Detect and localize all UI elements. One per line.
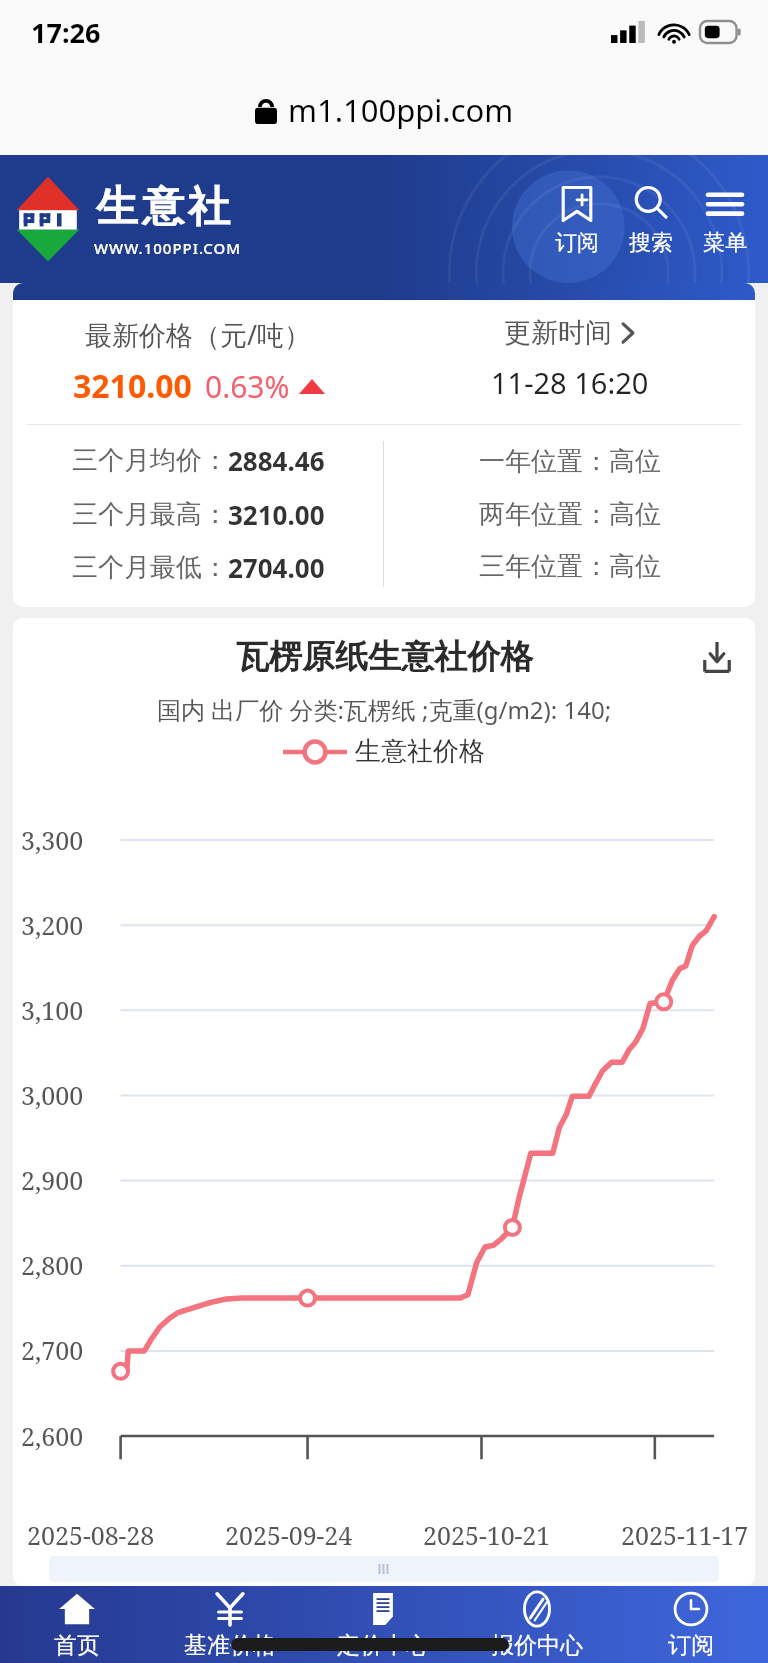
staticText: 生意社价格: [355, 735, 485, 768]
staticText: WWW.100PPI.COM: [94, 238, 242, 258]
staticText: 最新价格（元/吨）: [85, 316, 312, 353]
staticText: 高位: [609, 498, 661, 531]
staticText: 搜索: [629, 229, 673, 257]
staticText: 3,300: [21, 823, 755, 857]
staticText: 2025-10-21: [423, 1518, 551, 1552]
staticText: 3,100: [21, 993, 755, 1027]
staticText: 高位: [609, 445, 661, 478]
button[interactable]: 菜单: [700, 181, 750, 257]
button[interactable]: 更新时间: [384, 316, 755, 402]
staticText: 一年位置：: [479, 445, 609, 478]
staticText: 0.63%: [205, 366, 290, 407]
button[interactable]: 下载: [699, 639, 735, 675]
staticText: 2,700: [21, 1333, 755, 1367]
staticText: 2025-11-17: [621, 1518, 749, 1552]
button[interactable]: 订阅: [552, 181, 602, 257]
staticText: 更新时间: [504, 316, 612, 350]
staticText: m1.100ppi.com: [288, 89, 514, 131]
staticText: 2,600: [21, 1419, 755, 1453]
staticText: 定价中心: [337, 1631, 429, 1660]
button[interactable]: 基准价格: [153, 1586, 306, 1663]
button[interactable]: 报价中心: [460, 1586, 614, 1663]
staticText: 2025-09-24: [225, 1518, 353, 1552]
staticText: 生意社: [94, 181, 232, 234]
staticText: 三个月最高：: [72, 498, 228, 531]
staticText: 三个月最低：: [72, 551, 228, 584]
staticText: 17:26: [31, 14, 101, 51]
staticText: 菜单: [703, 229, 747, 257]
staticText: 2,800: [21, 1248, 755, 1282]
staticText: 订阅: [668, 1631, 714, 1660]
staticText: 2025-08-28: [27, 1518, 155, 1552]
staticText: 2884.46: [228, 443, 325, 478]
staticText: 2704.00: [228, 550, 325, 585]
staticText: 3210.00: [73, 364, 192, 408]
staticText: 国内 出厂价 分类:瓦楞纸 ;克重(g/m2): 140;: [13, 693, 755, 726]
staticText: 3,000: [21, 1078, 755, 1112]
staticText: 3210.00: [228, 497, 325, 532]
staticText: 三年位置：: [479, 550, 609, 583]
staticText: 11-28 16:20: [491, 363, 649, 402]
staticText: 订阅: [555, 229, 599, 257]
button[interactable]: 首页: [0, 1586, 153, 1663]
staticText: 3,200: [21, 908, 755, 942]
button[interactable]: 搜索: [626, 181, 676, 257]
button[interactable]: 订阅: [614, 1586, 768, 1663]
staticText: 基准价格: [184, 1631, 276, 1660]
staticText: 报价中心: [491, 1631, 583, 1660]
staticText: 高位: [609, 550, 661, 583]
staticText: 首页: [54, 1631, 100, 1660]
staticText: 两年位置：: [479, 498, 609, 531]
staticText: 2,900: [21, 1163, 755, 1197]
button[interactable]: 定价中心: [306, 1586, 460, 1663]
staticText: 瓦楞原纸生意社价格: [236, 636, 533, 678]
staticText: 三个月均价：: [72, 444, 228, 477]
